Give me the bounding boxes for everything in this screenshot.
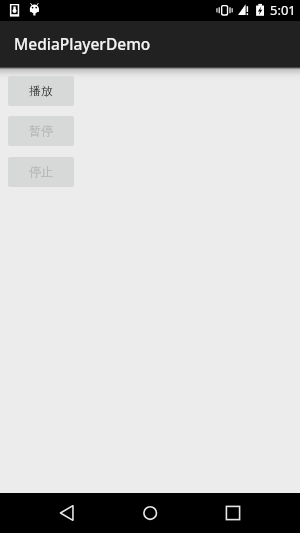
- button[interactable]: 停止: [8, 157, 74, 187]
- button[interactable]: Home: [125, 493, 175, 533]
- staticText: 暂停: [29, 123, 53, 138]
- button[interactable]: 暂停: [8, 116, 74, 146]
- button[interactable]: Back: [42, 493, 92, 533]
- button[interactable]: 播放: [8, 76, 74, 106]
- staticText: MediaPlayerDemo: [14, 33, 151, 54]
- button[interactable]: Recents: [208, 493, 258, 533]
- staticText: 停止: [29, 164, 53, 179]
- staticText: 5:01: [270, 1, 296, 19]
- staticText: 播放: [29, 83, 53, 98]
